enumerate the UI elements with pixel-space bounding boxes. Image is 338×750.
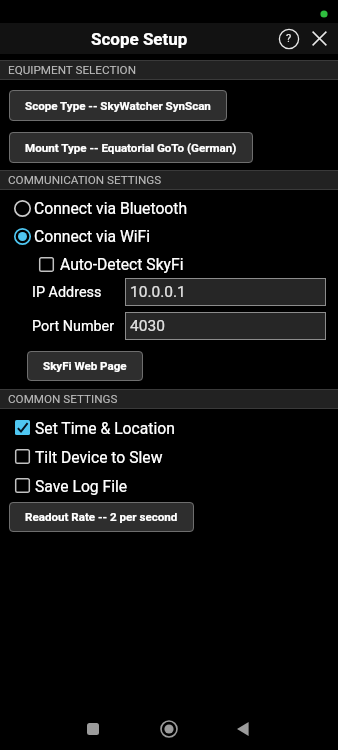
staticText: IP Address [32, 284, 125, 301]
button[interactable]: Set Time & Location [0, 413, 338, 442]
staticText: Scope Setup [91, 29, 188, 49]
button[interactable]: 10.0.0.1 [125, 278, 326, 306]
button[interactable]: Back [224, 708, 266, 750]
staticText: EQUIPMENT SELECTION [8, 63, 136, 77]
button[interactable]: Scope Type -- SkyWatcher SynScan [9, 90, 227, 121]
staticText: Set Time & Location [35, 419, 175, 437]
button[interactable]: SkyFi Web Page [27, 351, 143, 381]
staticText: SkyFi Web Page [43, 359, 127, 373]
staticText: COMMON SETTINGS [8, 392, 118, 406]
button[interactable]: Tilt Device to Slew [0, 442, 338, 471]
staticText: Auto-Detect SkyFi [60, 255, 184, 273]
staticText: Connect via WiFi [34, 227, 151, 245]
staticText: Save Log File [35, 477, 128, 495]
button[interactable]: Recents [72, 708, 114, 750]
button[interactable]: Connect via WiFi [0, 222, 338, 250]
button[interactable]: Save Log File [0, 471, 338, 500]
staticText: Connect via Bluetooth [34, 199, 188, 217]
staticText: Tilt Device to Slew [35, 448, 163, 466]
staticText: Readout Rate -- 2 per second [25, 510, 178, 524]
staticText: 10.0.0.1 [130, 283, 186, 301]
button[interactable]: Auto-Detect SkyFi [39, 255, 184, 273]
staticText: Scope Type -- SkyWatcher SynScan [25, 99, 211, 113]
button[interactable]: Home [148, 708, 190, 750]
button[interactable]: Readout Rate -- 2 per second [9, 502, 194, 532]
button[interactable]: 4030 [125, 312, 326, 340]
button[interactable]: Mount Type -- Equatorial GoTo (German) [9, 132, 253, 163]
button[interactable]: Connect via Bluetooth [0, 194, 338, 222]
staticText: 4030 [130, 317, 165, 335]
button[interactable]: Help [273, 23, 304, 54]
staticText: ? [286, 32, 292, 45]
staticText: COMMUNICATION SETTINGS [8, 173, 162, 187]
staticText: Port Number [32, 318, 125, 335]
button[interactable]: Close [304, 23, 335, 54]
staticText: Mount Type -- Equatorial GoTo (German) [25, 141, 237, 155]
